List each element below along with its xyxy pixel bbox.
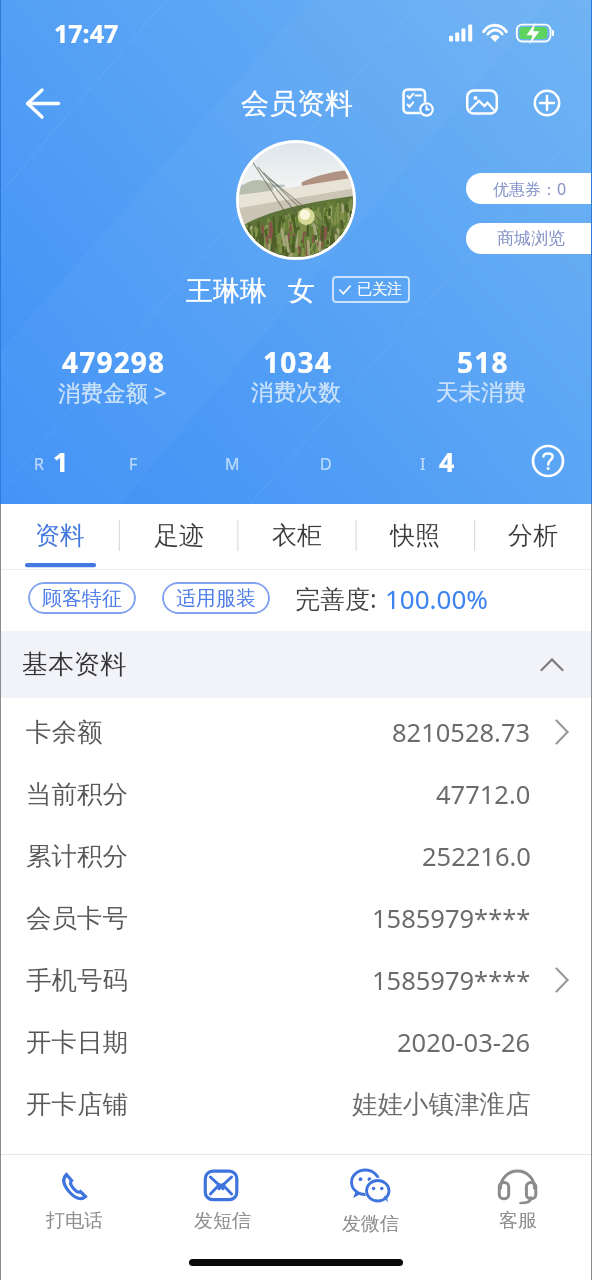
button[interactable]: 快照 <box>356 504 474 570</box>
staticText: 1585979**** <box>372 901 531 936</box>
button[interactable]: 衣柜 <box>238 504 356 570</box>
staticText: 2020-03-26 <box>397 1025 531 1060</box>
staticText: 资料 <box>35 520 85 551</box>
button[interactable]: 手机号码 <box>0 949 592 1011</box>
staticText: 顾客特征 <box>42 586 122 611</box>
button[interactable]: 基本资料 <box>0 631 592 698</box>
button[interactable]: 累计积分 <box>0 825 592 887</box>
staticText: 消费次数 <box>251 378 341 406</box>
staticText: 252216.0 <box>422 839 531 874</box>
button[interactable]: 开卡店铺 <box>0 1073 592 1135</box>
staticText: 足迹 <box>154 520 204 551</box>
staticText: 手机号码 <box>26 964 128 996</box>
button[interactable]: M <box>219 440 245 484</box>
button[interactable]: 适用服装 <box>162 582 270 614</box>
button[interactable]: 资料 <box>0 504 119 570</box>
staticText: D <box>320 453 332 475</box>
button[interactable]: 已关注 <box>332 276 410 303</box>
button[interactable]: 足迹 <box>119 504 238 570</box>
button[interactable]: 开卡日期 <box>0 1011 592 1073</box>
staticText: 100.00% <box>385 581 488 616</box>
staticText: 518 <box>457 343 509 381</box>
button[interactable]: 1034 <box>204 344 388 406</box>
staticText: R <box>34 453 44 475</box>
button[interactable]: 顾客特征 <box>28 582 136 614</box>
staticText: 会员卡号 <box>26 902 128 934</box>
staticText: 娃娃小镇津淮店 <box>352 1088 531 1120</box>
button[interactable]: 发微信 <box>296 1154 444 1254</box>
staticText: 开卡日期 <box>26 1026 128 1058</box>
staticText: 快照 <box>390 520 440 551</box>
staticText: 客服 <box>499 1209 537 1233</box>
button[interactable]: 卡余额 <box>0 701 592 763</box>
button[interactable]: Tasks <box>398 82 438 122</box>
staticText: 发短信 <box>194 1209 251 1233</box>
staticText: 1034 <box>263 343 332 381</box>
button[interactable]: Avatar <box>239 143 353 257</box>
staticText: 基本资料 <box>22 648 126 681</box>
button[interactable]: 会员卡号 <box>0 887 592 949</box>
staticText: 已关注 <box>357 280 402 299</box>
button[interactable]: D <box>314 440 340 484</box>
button[interactable]: 商城浏览 <box>466 223 592 254</box>
staticText: 打电话 <box>46 1209 103 1233</box>
button[interactable]: R <box>28 440 70 484</box>
staticText: 适用服装 <box>176 586 256 611</box>
button[interactable]: 打电话 <box>0 1154 148 1254</box>
staticText: 当前积分 <box>26 778 128 810</box>
staticText: 1585979**** <box>372 963 531 998</box>
staticText: 会员资料 <box>241 86 353 121</box>
staticText: F <box>129 453 138 475</box>
staticText: 累计积分 <box>26 840 128 872</box>
button[interactable]: Add <box>527 83 567 123</box>
staticText: 发微信 <box>342 1212 399 1236</box>
staticText: 优惠券：0 <box>493 178 567 200</box>
button[interactable]: 客服 <box>444 1154 592 1254</box>
button[interactable]: 优惠券：0 <box>466 173 592 204</box>
staticText: 消费金额 > <box>58 377 167 408</box>
staticText: 1 <box>53 443 69 480</box>
staticText: 王琳琳 女 <box>186 271 316 308</box>
button[interactable]: Photos <box>462 82 502 122</box>
staticText: 商城浏览 <box>497 228 565 249</box>
button[interactable]: 当前积分 <box>0 763 592 825</box>
button[interactable]: Help <box>528 441 568 481</box>
staticText: 47712.0 <box>436 777 531 812</box>
button[interactable]: 518 <box>389 344 573 406</box>
button[interactable]: I <box>414 440 456 484</box>
staticText: 卡余额 <box>26 716 103 748</box>
staticText: 衣柜 <box>272 520 322 551</box>
button[interactable]: 479298 <box>20 344 204 406</box>
staticText: 天未消费 <box>436 378 526 406</box>
staticText: 4 <box>439 443 455 480</box>
staticText: 17:47 <box>54 16 119 50</box>
button[interactable]: 分析 <box>474 504 592 570</box>
button[interactable]: Back <box>16 77 68 129</box>
staticText: I <box>420 453 426 475</box>
button[interactable]: F <box>123 440 149 484</box>
staticText: 分析 <box>508 520 558 551</box>
staticText: 开卡店铺 <box>26 1088 128 1120</box>
staticText: 完善度: <box>295 581 377 615</box>
button[interactable]: 发短信 <box>148 1154 296 1254</box>
staticText: 8210528.73 <box>392 715 531 750</box>
staticText: M <box>225 453 240 475</box>
staticText: 479298 <box>62 343 166 381</box>
